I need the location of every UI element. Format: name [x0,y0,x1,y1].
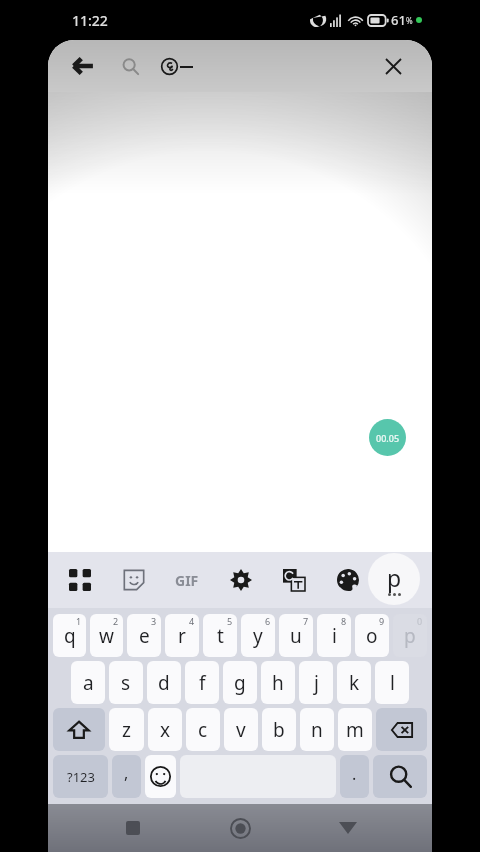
staticText: q [64,623,76,649]
button[interactable]: Clear [374,47,412,85]
button[interactable]: Settings [221,560,261,600]
staticText: 7 [303,615,309,627]
staticText: 11:22 [72,11,108,30]
button[interactable]: Backspace [376,708,427,751]
button[interactable]: b [262,708,296,751]
staticText: t [217,623,224,649]
button[interactable]: f [185,661,219,704]
button[interactable]: e [127,614,161,657]
button[interactable]: r [165,614,199,657]
button[interactable]: Emoji [145,755,176,798]
button[interactable]: Apps [60,560,100,600]
staticText: % [406,15,413,26]
button[interactable]: d [147,661,181,704]
staticText: n [311,717,323,743]
button[interactable]: Home [217,805,263,851]
staticText: x [160,717,171,743]
staticText: w [99,623,114,649]
button[interactable]: Search [373,755,427,798]
button[interactable]: y [241,614,275,657]
button[interactable]: k [337,661,371,704]
button[interactable]: p [393,614,427,657]
button[interactable]: Stickers [114,560,154,600]
button[interactable]: l [375,661,409,704]
staticText: h [272,670,284,696]
button[interactable]: Themes [328,560,368,600]
staticText: l [390,670,395,696]
staticText: 6 [265,615,271,627]
button[interactable]: m [338,708,372,751]
button[interactable]: 00.05 [369,419,406,456]
button[interactable]: Recents [110,805,156,851]
staticText: f [199,670,206,696]
staticText: 9 [379,615,385,627]
staticText: 61 [391,11,406,29]
staticText: v [236,717,246,743]
button[interactable]: z [109,708,144,751]
staticText: p [404,623,416,649]
button[interactable]: , [112,755,141,798]
button[interactable]: a [71,661,105,704]
staticText: 4 [189,615,195,627]
button[interactable]: ?123 [53,755,108,798]
staticText: 00.05 [376,432,400,444]
staticText: c [198,717,208,743]
button[interactable]: n [300,708,334,751]
staticText: i [332,623,337,649]
staticText: 0 [417,615,423,627]
staticText: . [352,763,357,785]
button[interactable]: j [299,661,333,704]
staticText: m [346,717,364,743]
staticText: k [349,670,360,696]
button[interactable]: w [90,614,123,657]
button[interactable]: x [148,708,182,751]
button[interactable]: t [203,614,237,657]
staticText: p [387,562,402,593]
staticText: z [122,717,131,743]
button[interactable]: GIF [167,560,207,600]
button[interactable]: Back [325,805,371,851]
staticText: s [121,670,131,696]
button[interactable]: v [224,708,258,751]
button[interactable]: u [279,614,313,657]
button[interactable]: c [186,708,220,751]
button[interactable]: p [368,553,420,605]
button[interactable]: s [109,661,143,704]
staticText: y [253,623,263,649]
staticText: a [83,670,94,696]
staticText: 8 [341,615,347,627]
staticText: r [178,623,186,649]
staticText: GIF [175,571,199,590]
button[interactable]: h [261,661,295,704]
staticText: u [290,623,302,649]
staticText: o [366,623,378,649]
button[interactable]: Back [62,45,104,87]
button[interactable]: i [317,614,351,657]
staticText: 1 [76,615,82,627]
button[interactable]: . [340,755,369,798]
staticText: d [158,670,170,696]
staticText: j [314,670,319,696]
button[interactable]: Translate [274,560,314,600]
staticText: g [234,670,246,696]
staticText: , [124,762,129,784]
button[interactable]: o [355,614,389,657]
staticText: e [139,623,150,649]
button[interactable]: Shift [53,708,105,751]
button[interactable]: g [223,661,257,704]
staticText: 5 [227,615,233,627]
staticText: b [273,717,285,743]
staticText: 3 [151,615,157,627]
staticText: 2 [113,615,119,627]
button[interactable]: q [53,614,86,657]
staticText: ?123 [67,768,95,786]
